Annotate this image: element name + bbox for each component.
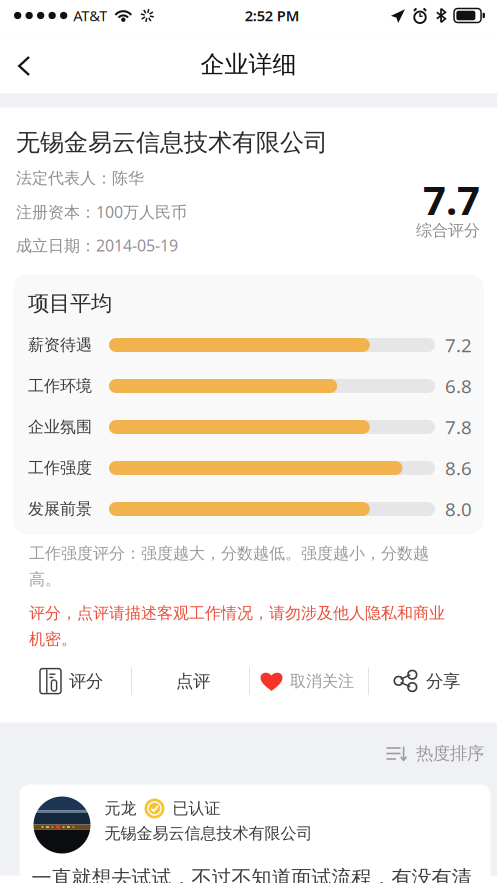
staticText: 项目平均 [28, 290, 112, 317]
staticText: 综合评分 [416, 221, 480, 240]
staticText: 7.2 [445, 333, 472, 357]
staticText: AT&T [73, 6, 107, 25]
staticText: 已认证 [172, 799, 220, 818]
staticText: 工作环境 [28, 376, 92, 396]
button[interactable]: 点评 [132, 657, 249, 705]
staticText: 法定代表人：陈华 [16, 168, 144, 188]
staticText: 7.8 [445, 415, 472, 439]
staticText: 取消关注 [290, 671, 354, 691]
staticText: 工作强度 [28, 458, 92, 478]
staticText: 6.8 [445, 374, 472, 398]
button[interactable]: 返回 [0, 41, 51, 91]
staticText: 评分 [69, 670, 103, 692]
button[interactable]: 取消关注 [250, 657, 368, 705]
staticText: 2:52 PM [245, 6, 300, 25]
staticText: 发展前景 [28, 499, 92, 519]
staticText: 企业详细 [200, 50, 296, 79]
button[interactable]: 评分 [0, 657, 131, 705]
staticText: 企业氛围 [28, 417, 92, 437]
staticText: 8.0 [445, 497, 472, 521]
staticText: 点评 [176, 670, 210, 692]
staticText: 分享 [426, 670, 460, 692]
staticText: 热度排序 [416, 743, 484, 764]
staticText: 工作强度评分：强度越大，分数越低。强度越小，分数越高。 [29, 543, 429, 589]
staticText: 无锡金易云信息技术有限公司 [104, 824, 312, 843]
staticText: 7.7 [423, 173, 480, 226]
button[interactable]: 分享 [369, 657, 497, 705]
staticText: 8.6 [445, 456, 472, 480]
staticText: 评分，点评请描述客观工作情况，请勿涉及他人隐私和商业机密。 [29, 603, 445, 649]
staticText: 元龙 [104, 799, 136, 818]
staticText: 注册资本：100万人民币 [16, 201, 187, 222]
staticText: 成立日期：2014-05-19 [16, 235, 178, 256]
staticText: 无锡金易云信息技术有限公司 [16, 128, 328, 157]
staticText: 薪资待遇 [28, 335, 92, 355]
button[interactable]: 热度排序 [386, 733, 497, 774]
staticText: 一直就想去试试，不过不知道面试流程，有没有清 [31, 865, 471, 883]
